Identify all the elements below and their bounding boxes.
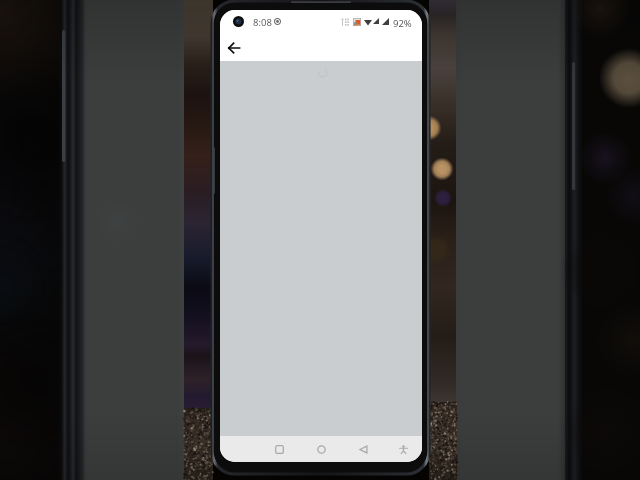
staticText: 8:08 xyxy=(253,16,272,29)
button[interactable]: Back xyxy=(353,439,373,459)
staticText: 92% xyxy=(393,17,412,30)
button[interactable]: Accessibility xyxy=(393,439,413,459)
button[interactable]: Home xyxy=(311,439,331,459)
button[interactable]: Navigate up xyxy=(222,36,246,60)
button[interactable]: Recents xyxy=(269,439,289,459)
